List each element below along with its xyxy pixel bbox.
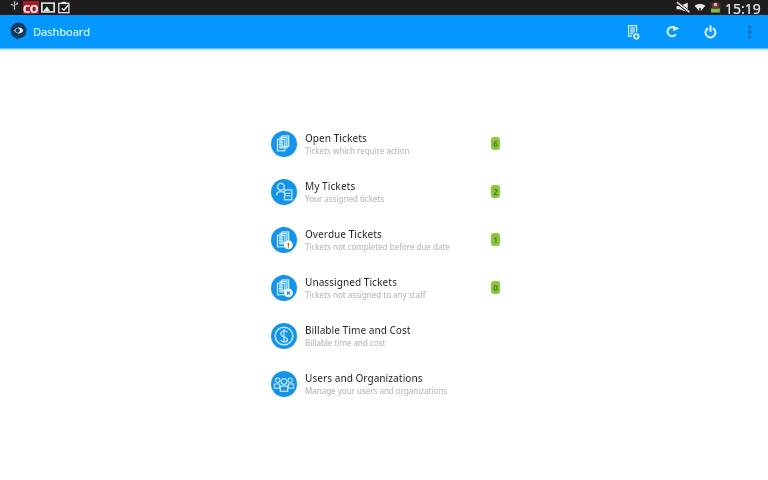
button[interactable]: Dashboard: [0, 15, 100, 48]
staticText: Billable Time and Cost: [305, 323, 411, 337]
staticText: 2: [493, 186, 498, 197]
button[interactable]: Logout: [691, 15, 729, 48]
staticText: 6: [493, 138, 498, 149]
staticText: Tickets not completed before due date: [305, 241, 450, 252]
button[interactable]: Unassigned Tickets: [0, 264, 768, 312]
staticText: 15:19: [725, 0, 761, 14]
button[interactable]: Refresh: [653, 15, 691, 48]
button[interactable]: Users and Organizations: [0, 360, 768, 408]
staticText: My Tickets: [305, 179, 356, 193]
staticText: 0: [493, 282, 498, 293]
staticText: Dashboard: [33, 24, 90, 39]
staticText: Tickets not assigned to any staff: [305, 289, 426, 300]
staticText: Open Tickets: [305, 131, 367, 145]
staticText: Manage your users and organizations: [305, 385, 448, 396]
staticText: Users and Organizations: [305, 371, 423, 385]
staticText: 1: [493, 234, 498, 245]
button[interactable]: My Tickets: [0, 168, 768, 216]
staticText: Your assigned tickets: [305, 193, 385, 204]
button[interactable]: More options: [733, 15, 765, 48]
staticText: CO: [23, 1, 39, 14]
staticText: Tickets which require action: [305, 145, 410, 156]
button[interactable]: Billable Time and Cost: [0, 312, 768, 360]
staticText: Billable time and cost: [305, 337, 386, 348]
button[interactable]: Overdue Tickets: [0, 216, 768, 264]
staticText: Overdue Tickets: [305, 227, 382, 241]
button[interactable]: New ticket: [614, 15, 652, 48]
button[interactable]: Open Tickets: [0, 120, 768, 168]
staticText: Unassigned Tickets: [305, 275, 398, 289]
